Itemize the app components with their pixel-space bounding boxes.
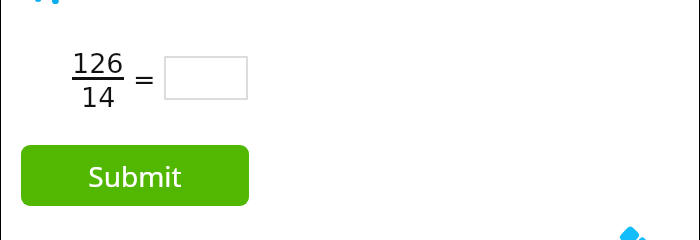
staticText: 14	[81, 82, 116, 113]
staticText: Submit	[88, 157, 182, 195]
button[interactable]: Submit	[21, 145, 249, 206]
button[interactable]: Answer input	[165, 57, 247, 99]
button[interactable]: Edit	[600, 190, 700, 240]
staticText: 126	[72, 48, 124, 79]
staticText: =	[133, 64, 156, 95]
